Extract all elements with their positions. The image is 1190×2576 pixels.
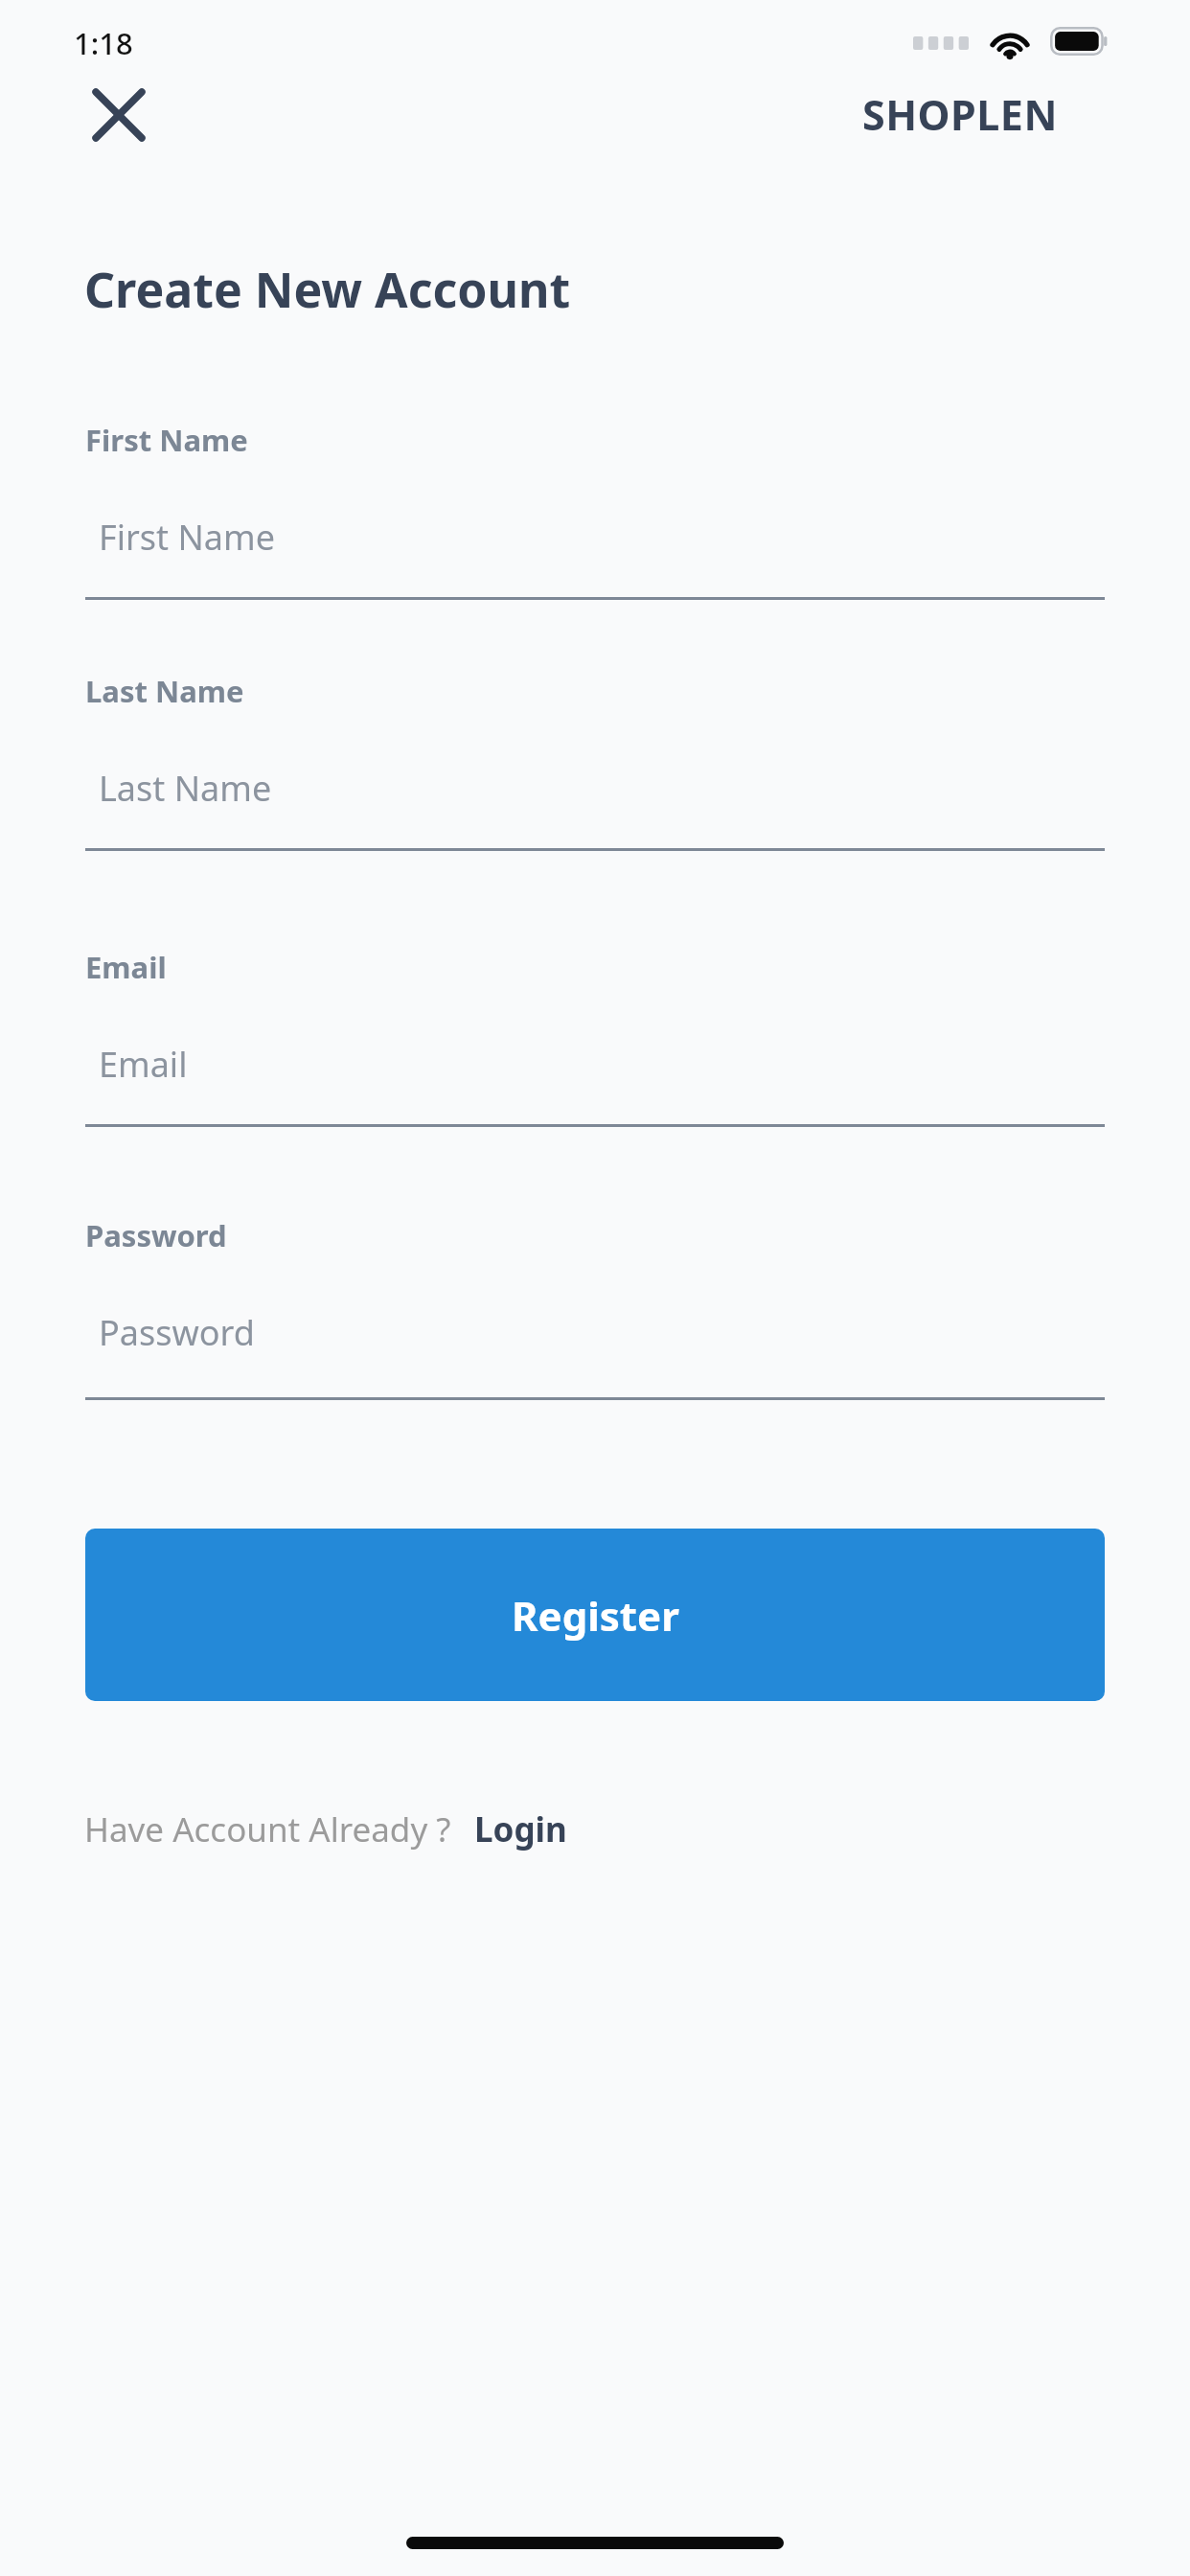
staticText: Last Name <box>85 671 244 711</box>
staticText: Register <box>512 1588 679 1643</box>
button[interactable]: Password <box>85 1296 1105 1401</box>
staticText: Have Account Already ? <box>84 1806 451 1852</box>
staticText: Email <box>85 947 167 987</box>
staticText: Email <box>99 1041 188 1088</box>
button[interactable]: SHOPLEN <box>862 86 1058 143</box>
staticText: First Name <box>85 420 248 460</box>
staticText: Create New Account <box>84 257 571 322</box>
staticText: Last Name <box>99 765 272 812</box>
button[interactable]: Register <box>85 1529 1105 1701</box>
staticText: Password <box>85 1215 227 1255</box>
button[interactable]: Email <box>85 1027 1105 1128</box>
staticText: First Name <box>99 514 275 561</box>
staticText: Password <box>99 1309 255 1356</box>
button[interactable]: First Name <box>85 500 1105 601</box>
button[interactable]: Login <box>472 1803 569 1856</box>
staticText: 1:18 <box>74 23 133 63</box>
button[interactable]: Last Name <box>85 751 1105 852</box>
staticText: Login <box>474 1806 567 1852</box>
button[interactable]: Close <box>73 69 165 161</box>
